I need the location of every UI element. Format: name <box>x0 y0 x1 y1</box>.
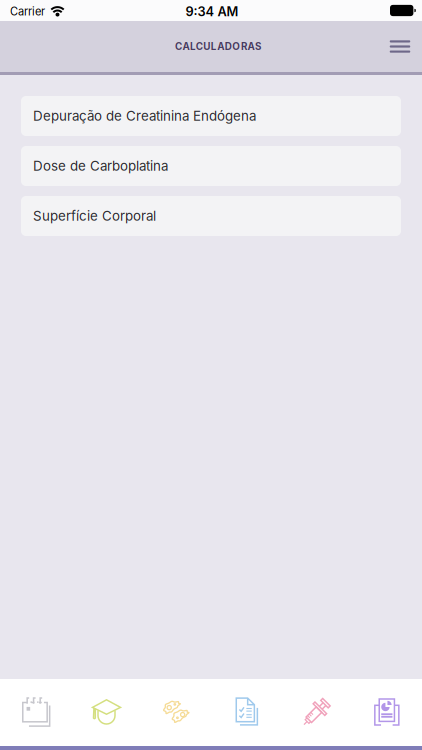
staticText: 9:34 AM <box>185 4 238 19</box>
button[interactable]: Menu <box>378 24 422 68</box>
staticText: Superfície Corporal <box>33 208 156 224</box>
button[interactable]: Medication <box>281 679 352 746</box>
button[interactable]: Superfície Corporal <box>21 196 401 236</box>
button[interactable]: Depuração de Creatinina Endógena <box>21 96 401 136</box>
button[interactable]: Dose de Carboplatina <box>21 146 401 186</box>
staticText: Dose de Carboplatina <box>33 158 168 174</box>
button[interactable]: Pathology <box>141 679 211 746</box>
button[interactable]: Notes <box>0 679 70 746</box>
button[interactable]: Reports <box>352 679 422 746</box>
button[interactable]: Learning <box>70 679 141 746</box>
staticText: Depuração de Creatinina Endógena <box>33 108 256 124</box>
staticText: Carrier <box>10 5 45 18</box>
button[interactable]: Protocols <box>211 679 281 746</box>
staticText: CALCULADORAS <box>175 40 261 52</box>
